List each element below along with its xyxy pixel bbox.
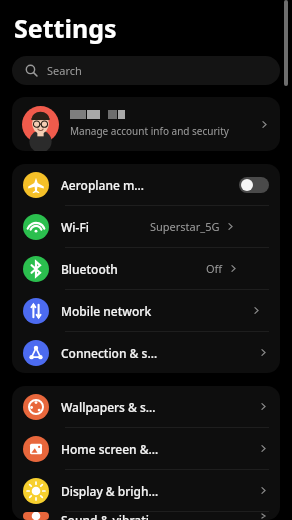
button[interactable]: Wi-Fi [12,206,280,247]
button[interactable]: Mobile network [12,290,280,331]
staticText: Connection & sharing [61,345,159,361]
staticText: Sound & vibration [61,512,159,520]
staticText: Home screen & Lock screen [61,441,159,457]
button[interactable]: Home screen & Lock screen [12,428,280,469]
staticText: Superstar_5G [150,219,220,234]
button[interactable]: Aeroplane mode [12,164,280,205]
staticText: Bluetooth [61,261,118,277]
button[interactable]: Manage account info and security [12,97,280,151]
staticText: Settings [14,11,117,45]
button[interactable]: Sound & vibration [12,512,280,520]
staticText: Mobile network [61,303,152,319]
button[interactable]: Wallpapers & style [12,386,280,427]
staticText: Manage account info and security [70,124,229,138]
staticText: Aeroplane mode [61,177,150,193]
button[interactable]: Display & brightness [12,470,280,511]
button[interactable]: Aeroplane mode toggle, off [239,177,269,193]
staticText: Wallpapers & style [61,399,159,415]
staticText: Off [206,261,223,276]
staticText: Wi-Fi [61,219,89,235]
button[interactable]: Bluetooth [12,248,280,289]
button[interactable]: Search [12,56,280,85]
staticText: Display & brightness [61,483,159,499]
staticText: Search [47,63,82,78]
button[interactable]: Connection & sharing [12,332,280,373]
